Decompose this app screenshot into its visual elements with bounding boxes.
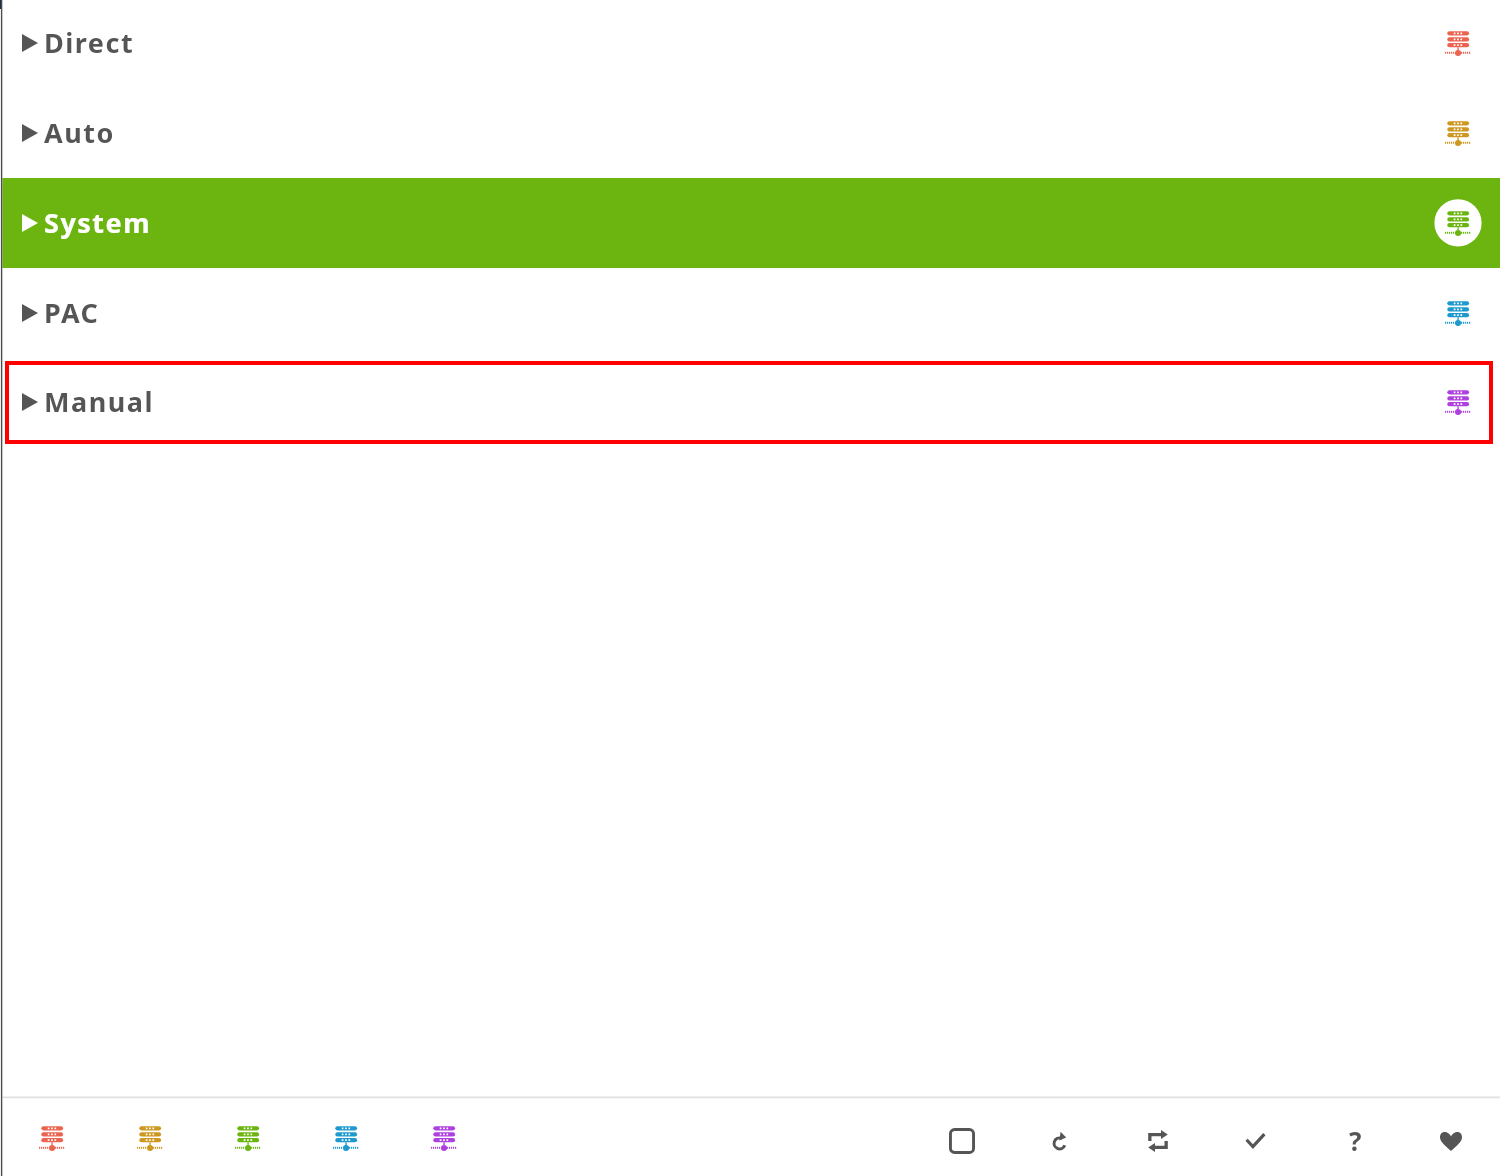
button[interactable]: Favorite <box>1418 1108 1484 1174</box>
button[interactable]: Refresh <box>1027 1108 1093 1174</box>
staticText: System <box>44 204 152 241</box>
button[interactable]: Apply <box>1222 1108 1288 1174</box>
staticText: Auto <box>44 114 115 151</box>
button[interactable]: Auto <box>117 1108 183 1174</box>
button[interactable]: System <box>0 178 1500 268</box>
staticText: PAC <box>44 294 100 331</box>
button[interactable]: Help <box>1322 1108 1388 1174</box>
button[interactable]: Manual <box>0 358 1500 446</box>
staticText: Manual <box>44 383 154 420</box>
button[interactable]: Auto <box>0 88 1500 178</box>
staticText: ? <box>1349 1123 1362 1158</box>
button[interactable]: PAC <box>0 268 1500 358</box>
button[interactable]: Direct <box>0 0 1500 88</box>
button[interactable]: Direct <box>19 1108 85 1174</box>
staticText: Direct <box>44 24 135 61</box>
button[interactable]: Select all <box>929 1108 995 1174</box>
button[interactable]: System <box>215 1108 281 1174</box>
button[interactable]: Manual <box>411 1108 477 1174</box>
button[interactable]: PAC <box>313 1108 379 1174</box>
button[interactable]: Swap <box>1125 1108 1191 1174</box>
